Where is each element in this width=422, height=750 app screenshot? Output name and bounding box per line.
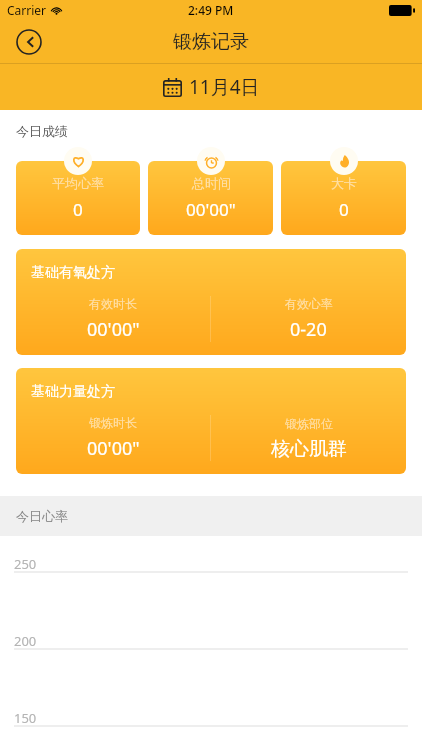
staticText: 0 (339, 198, 349, 221)
staticText: Carrier (7, 2, 47, 18)
staticText: 有效心率 (285, 296, 333, 311)
staticText: 00'00" (186, 198, 236, 221)
staticText: 基础力量处方 (31, 383, 115, 401)
staticText: 核心肌群 (271, 437, 347, 461)
staticText: 00'00" (87, 436, 140, 461)
staticText: 锻炼记录 (173, 30, 249, 54)
button[interactable]: 基础有氧处方 (16, 249, 406, 355)
staticText: 11月4日 (189, 74, 260, 100)
staticText: 平均心率 (52, 175, 104, 191)
button[interactable]: 11月4日 (0, 64, 422, 110)
staticText: 0-20 (290, 317, 327, 342)
staticText: 锻炼时长 (89, 415, 137, 430)
staticText: 150 (14, 709, 37, 727)
staticText: 250 (14, 555, 37, 573)
staticText: 0 (73, 198, 83, 221)
staticText: 锻炼部位 (285, 416, 333, 431)
staticText: 200 (14, 632, 37, 650)
button[interactable]: 平均心率 (16, 161, 140, 235)
staticText: 基础有氧处方 (31, 264, 115, 282)
button[interactable]: 大卡 (281, 161, 406, 235)
button[interactable]: 基础力量处方 (16, 368, 406, 474)
staticText: 2:49 PM (188, 2, 234, 18)
staticText: 00'00" (87, 317, 140, 342)
button[interactable]: Back (13, 26, 45, 58)
staticText: 有效时长 (89, 296, 137, 311)
staticText: 今日成绩 (16, 123, 68, 139)
button[interactable]: 总时间 (148, 161, 273, 235)
staticText: 总时间 (192, 175, 231, 191)
staticText: 大卡 (331, 175, 357, 191)
staticText: 今日心率 (16, 508, 68, 524)
